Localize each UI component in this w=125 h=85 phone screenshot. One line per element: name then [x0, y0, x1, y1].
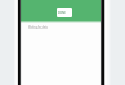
staticText: DONE	[58, 11, 66, 15]
button[interactable]: Waiting for data	[21, 22, 101, 30]
button[interactable]: DONE	[57, 8, 72, 17]
staticText: Waiting for data	[28, 25, 48, 29]
